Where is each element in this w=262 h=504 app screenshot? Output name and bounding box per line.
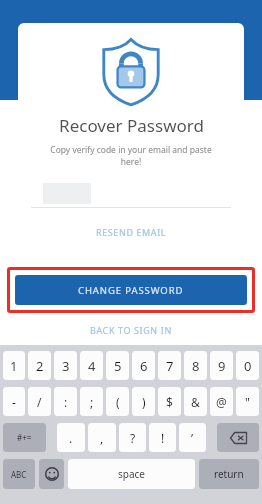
button[interactable]: #+= [3,423,46,452]
staticText: 7 [166,357,174,375]
button[interactable]: ABC [3,459,35,489]
button[interactable]: , [88,423,116,452]
button[interactable]: 5 [106,351,129,380]
staticText: 9 [218,357,226,375]
staticText: & [191,394,200,410]
staticText: CHANGE PASSWORD [78,284,184,297]
staticText: 2 [36,357,44,375]
button[interactable]: ? [119,423,146,452]
staticText: 4 [88,357,96,375]
button[interactable]: ) [132,387,155,416]
staticText: ) [142,394,146,410]
button[interactable]: @ [210,387,233,416]
button[interactable]: " [236,387,259,416]
staticText: ABC [11,469,27,480]
button[interactable]: 7 [158,351,181,380]
staticText: - [12,394,16,410]
staticText: ; [90,394,94,410]
staticText: #+= [17,432,32,443]
staticText: " [245,394,250,410]
staticText: return [214,467,244,481]
button[interactable]: $ [158,387,181,416]
button[interactable]: space [68,459,195,489]
staticText: : [64,394,68,410]
button[interactable]: 8 [184,351,207,380]
staticText: 8 [192,357,200,375]
staticText: space [118,467,145,481]
button[interactable]: 6 [132,351,155,380]
button[interactable]: ! [149,423,176,452]
staticText: @ [216,394,227,410]
staticText: Recover Password [59,114,204,137]
button[interactable]: . [57,423,85,452]
button[interactable]: return [199,459,259,489]
staticText: 6 [140,357,148,375]
button[interactable]: Emoji [39,459,64,489]
staticText: ? [130,430,136,446]
button[interactable]: ( [106,387,129,416]
staticText: . [69,430,73,446]
staticText: Copy verify code in your email and paste… [39,144,223,168]
staticText: 5 [114,357,122,375]
staticText: , [100,430,104,446]
staticText: ( [116,394,120,410]
button[interactable]: 2 [28,351,51,380]
button[interactable]: & [184,387,207,416]
staticText: $ [166,394,173,410]
button[interactable]: 3 [54,351,77,380]
button[interactable]: Backspace [217,423,259,452]
staticText: RESEND EMAIL [96,226,167,238]
staticText: 0 [244,357,252,375]
staticText: 3 [62,357,70,375]
staticText: ’ [191,430,194,446]
button[interactable]: / [28,387,51,416]
button[interactable]: BACK TO SIGN IN [0,321,262,339]
button[interactable]: ’ [179,423,206,452]
button[interactable]: RESEND EMAIL [31,222,231,242]
button[interactable]: CHANGE PASSWORD [15,275,247,305]
button[interactable]: 4 [80,351,103,380]
button[interactable]: ; [80,387,103,416]
button[interactable]: 1 [3,351,25,380]
button[interactable]: 0 [236,351,259,380]
button[interactable]: - [3,387,25,416]
button[interactable]: Verification code field [31,179,231,207]
button[interactable]: : [54,387,77,416]
staticText: ! [161,430,165,446]
staticText: / [37,394,42,410]
staticText: BACK TO SIGN IN [90,324,172,336]
staticText: 1 [10,357,18,375]
button[interactable]: 9 [210,351,233,380]
